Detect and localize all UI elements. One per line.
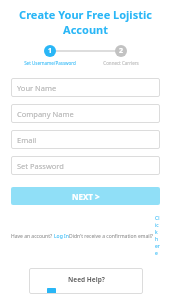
- staticText: Didn't receive a confirmation email?: [69, 233, 155, 240]
- staticText: Log In: [54, 233, 69, 240]
- staticText: Your Name: [17, 83, 57, 93]
- button[interactable]: Set Password: [11, 156, 160, 175]
- staticText: 1: [48, 46, 53, 56]
- staticText: 2: [119, 46, 124, 56]
- staticText: NEXT >: [72, 191, 100, 202]
- staticText: Need Help?: [68, 275, 105, 284]
- staticText: Email: [17, 135, 37, 145]
- staticText: Set Username/Password: [20, 60, 80, 66]
- staticText: Company Name: [17, 109, 74, 119]
- staticText: Set Password: [17, 161, 64, 171]
- button[interactable]: Click here: [155, 215, 160, 257]
- staticText: Connect Carriers: [91, 60, 151, 66]
- button[interactable]: 1: [20, 45, 80, 66]
- button[interactable]: 2: [91, 45, 151, 66]
- staticText: Create Your Free Lojistic Account: [0, 7, 171, 37]
- button[interactable]: Log In: [54, 233, 69, 240]
- button[interactable]: NEXT >: [11, 187, 160, 205]
- staticText: Have an account?: [11, 233, 54, 240]
- staticText: Click here: [155, 215, 160, 257]
- button[interactable]: Your Name: [11, 78, 160, 97]
- button[interactable]: Email: [11, 130, 160, 149]
- button[interactable]: Company Name: [11, 104, 160, 123]
